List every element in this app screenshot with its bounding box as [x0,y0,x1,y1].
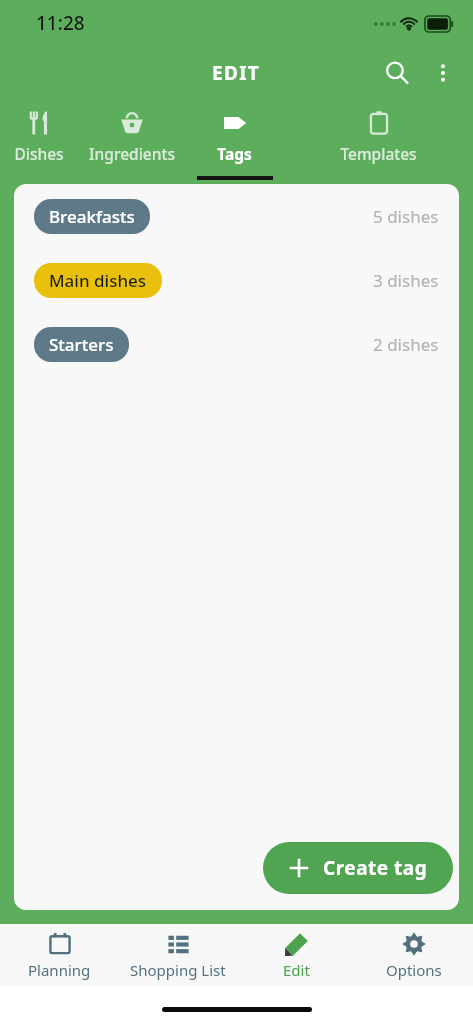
staticText: Create tag [323,855,428,881]
button[interactable]: Edit [237,924,355,986]
button[interactable]: More options [421,51,465,95]
staticText: 5 dishes [373,205,439,228]
button[interactable]: Dishes [0,100,78,184]
staticText: EDIT [212,60,261,86]
staticText: Edit [283,960,310,980]
staticText: Planning [28,960,91,980]
staticText: 3 dishes [373,269,439,292]
staticText: Starters [49,333,114,356]
staticText: Options [386,960,442,980]
staticText: Tags [217,143,252,164]
button[interactable]: Main dishes [14,248,459,312]
button[interactable]: Starters [14,312,459,376]
button[interactable]: Tags [186,100,283,184]
staticText: Breakfasts [49,205,135,228]
button[interactable]: Search [373,49,421,97]
button[interactable]: Create tag [263,842,453,894]
button[interactable]: Breakfasts [14,184,459,248]
button[interactable]: Templates [283,100,473,184]
staticText: Main dishes [49,269,147,292]
staticText: Shopping List [130,960,226,980]
button[interactable]: Planning [0,924,119,986]
staticText: Ingredients [89,143,175,164]
staticText: Templates [340,143,417,164]
button[interactable]: Options [355,924,473,986]
button[interactable]: Ingredients [78,100,186,184]
button[interactable]: Shopping List [119,924,237,986]
staticText: Dishes [14,143,64,164]
staticText: 2 dishes [373,333,439,356]
staticText: 11:28 [36,10,85,36]
